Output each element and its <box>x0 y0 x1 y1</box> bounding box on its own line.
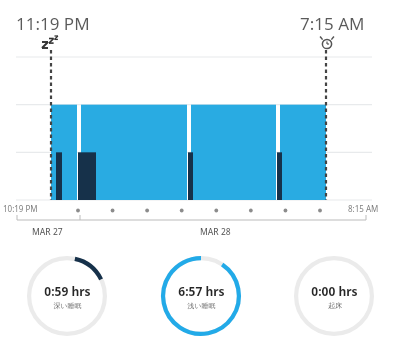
staticText: 起床 <box>328 301 342 310</box>
staticText: 深い睡眠 <box>53 301 82 310</box>
staticText: 0:00 hrs <box>311 283 358 299</box>
button[interactable]: 0:59 hrs <box>0 255 134 353</box>
staticText: 10:19 PM <box>3 203 38 214</box>
staticText: MAR 28 <box>200 226 231 238</box>
staticText: 0:59 hrs <box>44 283 91 299</box>
button[interactable]: 0:00 hrs <box>267 255 400 353</box>
staticText: 11:19 PM <box>16 12 90 35</box>
staticText: 7:15 AM <box>300 12 365 35</box>
staticText: 浅い睡眠 <box>187 301 216 310</box>
staticText: MAR 27 <box>32 226 63 238</box>
other: Sleep start <box>41 35 63 51</box>
staticText: 6:57 hrs <box>178 283 225 299</box>
button[interactable]: 6:57 hrs <box>134 255 267 353</box>
staticText: 8:15 AM <box>348 203 379 214</box>
other: Alarm <box>320 36 334 50</box>
